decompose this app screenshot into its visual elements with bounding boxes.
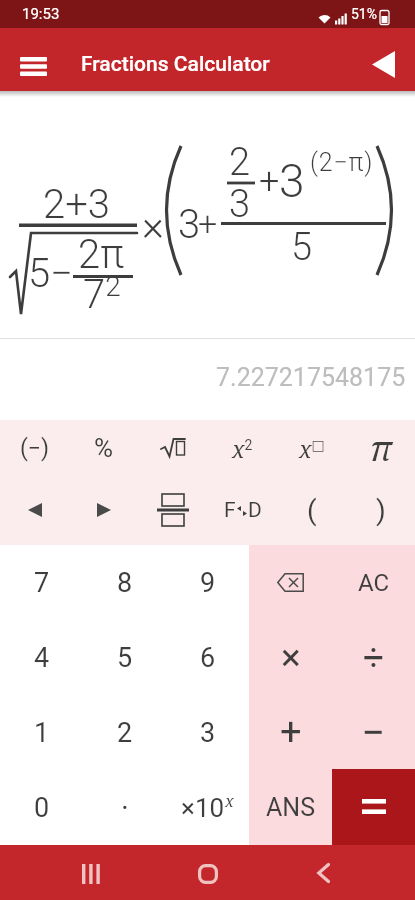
staticText: 9 — [200, 567, 216, 599]
staticText: × — [281, 636, 301, 679]
button[interactable]: ) — [346, 479, 415, 541]
button[interactable]: 0 — [0, 770, 83, 845]
button[interactable]: 7 — [0, 545, 83, 620]
button[interactable] — [12, 55, 56, 83]
staticText: % — [94, 433, 114, 463]
staticText: ×10 — [181, 793, 225, 823]
staticText: 2π — [78, 231, 125, 278]
staticText: x□ — [299, 433, 325, 464]
staticText: + — [259, 161, 280, 203]
staticText: (−) — [20, 435, 50, 462]
button[interactable]: π — [346, 417, 415, 479]
staticText: 6 — [200, 642, 216, 674]
button[interactable] — [71, 854, 111, 894]
button[interactable] — [188, 854, 228, 894]
button[interactable]: % — [69, 417, 138, 479]
staticText: ) — [376, 494, 386, 527]
button[interactable] — [0, 479, 69, 541]
button[interactable]: 8 — [83, 545, 166, 620]
staticText: 2+3 — [43, 181, 110, 228]
staticText: F — [224, 498, 236, 523]
staticText: 8 — [117, 567, 133, 599]
staticText: 5 — [117, 642, 133, 674]
staticText: Fractions Calculator — [81, 52, 270, 77]
button[interactable]: 5 — [83, 620, 166, 695]
staticText: × — [142, 201, 164, 250]
button[interactable]: 3 — [166, 695, 249, 770]
staticText: (2−π) — [310, 148, 374, 177]
staticText: 0 — [34, 792, 50, 824]
button[interactable] — [303, 853, 343, 893]
button[interactable]: x2 — [208, 417, 277, 479]
staticText: + — [280, 710, 302, 755]
button[interactable]: x□ — [277, 417, 346, 479]
staticText: x — [225, 790, 234, 812]
staticText: 3 — [279, 154, 305, 208]
button[interactable]: 4 — [0, 620, 83, 695]
button[interactable]: − — [332, 695, 415, 770]
button[interactable] — [360, 40, 406, 80]
staticText: 72 — [83, 270, 121, 317]
staticText: 2 — [117, 717, 133, 749]
staticText: π — [370, 425, 392, 471]
staticText: 7.227217548175 — [216, 363, 406, 392]
button[interactable]: ÷ — [332, 620, 415, 695]
staticText: D — [248, 498, 262, 523]
staticText: 3 — [178, 201, 201, 248]
button[interactable]: × — [249, 620, 332, 695]
staticText: 51% — [351, 6, 377, 22]
staticText: + — [198, 203, 218, 243]
staticText: 4 — [34, 642, 50, 674]
staticText: x2 — [232, 433, 253, 464]
button[interactable] — [332, 769, 415, 845]
staticText: ANS — [266, 793, 315, 822]
button[interactable] — [138, 479, 207, 541]
button[interactable]: F — [208, 479, 277, 541]
button[interactable]: + — [249, 695, 332, 770]
staticText: 3 — [229, 182, 251, 227]
staticText: 7 — [34, 567, 50, 599]
button[interactable] — [138, 417, 207, 479]
button[interactable]: 1 — [0, 695, 83, 770]
staticText: · — [121, 790, 129, 825]
staticText: 19:53 — [22, 5, 60, 23]
staticText: ( — [307, 494, 317, 527]
button[interactable]: AC — [332, 545, 415, 620]
button[interactable]: · — [83, 770, 166, 845]
button[interactable]: 9 — [166, 545, 249, 620]
button[interactable]: ( — [277, 479, 346, 541]
staticText: ÷ — [363, 636, 385, 679]
button[interactable]: 6 — [166, 620, 249, 695]
staticText: 5 — [291, 225, 313, 270]
button[interactable] — [249, 545, 332, 620]
staticText: 3 — [200, 717, 216, 749]
button[interactable] — [69, 479, 138, 541]
staticText: AC — [358, 569, 390, 597]
button[interactable]: (−) — [0, 417, 69, 479]
button[interactable]: ANS — [249, 770, 332, 845]
button[interactable]: ×10 — [166, 770, 249, 845]
staticText: 2 — [229, 140, 251, 185]
staticText: − — [361, 708, 386, 757]
staticText: 5− — [28, 250, 74, 297]
button[interactable]: 2 — [83, 695, 166, 770]
staticText: 1 — [34, 717, 50, 749]
